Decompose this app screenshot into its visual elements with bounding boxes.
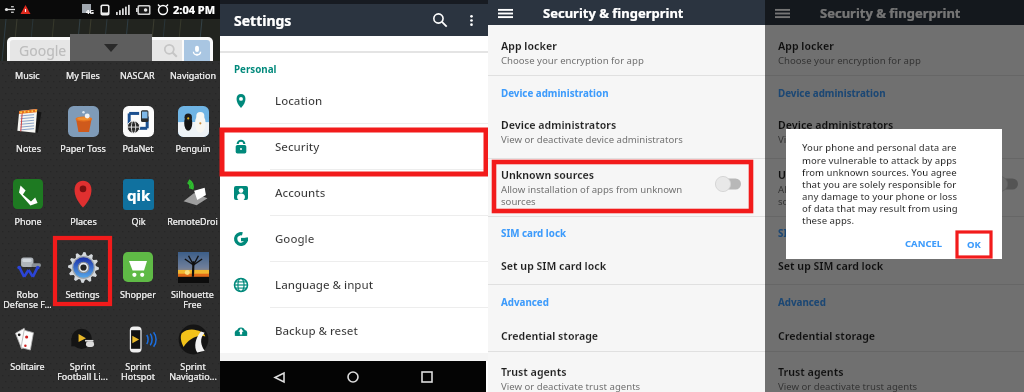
- button[interactable]: Google: [7, 37, 213, 61]
- button[interactable]: Robo Defense F...: [0, 250, 55, 316]
- staticText: Accounts: [275, 185, 326, 201]
- button[interactable]: Credential storage: [501, 326, 599, 346]
- staticText: 4G: [86, 8, 94, 16]
- button[interactable]: RemoteDroi: [165, 177, 220, 243]
- button[interactable]: Home: [338, 362, 368, 392]
- staticText: SIM card lock: [501, 227, 567, 240]
- button[interactable]: Language & input: [220, 262, 488, 308]
- staticText: Trust agents: [778, 365, 844, 379]
- button[interactable]: My Files: [55, 69, 110, 83]
- button[interactable]: Search: [426, 6, 454, 34]
- button[interactable]: Device administrators: [501, 118, 683, 146]
- button[interactable]: Device administrators: [778, 118, 960, 146]
- staticText: qik: [127, 185, 151, 205]
- staticText: View or deactivate device administrators: [778, 133, 960, 146]
- staticText: Unknown sources: [501, 168, 595, 182]
- staticText: Settings: [65, 288, 100, 300]
- button[interactable]: More options: [459, 8, 484, 33]
- button[interactable]: Navigation: [165, 69, 220, 83]
- button[interactable]: App locker: [501, 39, 644, 67]
- staticText: App locker: [501, 39, 557, 53]
- button[interactable]: Menu: [494, 2, 516, 24]
- button[interactable]: Trust agents: [778, 365, 918, 392]
- staticText: Allow installation of apps from unknown …: [501, 183, 683, 208]
- staticText: Security & fingerprint: [543, 4, 684, 22]
- button[interactable]: Penguin: [165, 104, 220, 170]
- staticText: Sprint Football Li...: [57, 360, 108, 382]
- staticText: View or deactivate trust agents: [778, 380, 918, 392]
- staticText: Solitaire: [10, 360, 45, 372]
- button[interactable]: Sprint Navigatio...: [165, 322, 220, 388]
- staticText: Settings: [234, 11, 292, 30]
- button[interactable]: CANCEL: [898, 233, 949, 253]
- button[interactable]: Back: [264, 362, 294, 392]
- button[interactable]: Backup & reset: [220, 308, 488, 354]
- button[interactable]: Notes: [0, 104, 55, 170]
- staticText: Set up SIM card lock: [501, 259, 607, 273]
- button[interactable]: Unknown sources: [778, 168, 960, 208]
- staticText: Choose your encryption for app: [778, 54, 921, 67]
- button[interactable]: Trust agents: [501, 365, 641, 392]
- staticText: Device administration: [501, 87, 609, 100]
- staticText: Choose your encryption for app: [501, 54, 644, 67]
- staticText: View or deactivate device administrators: [501, 133, 683, 146]
- button[interactable]: Recents: [412, 362, 442, 392]
- button[interactable]: Credential storage: [778, 326, 876, 346]
- button[interactable]: Set up SIM card lock: [778, 256, 884, 276]
- button[interactable]: Menu: [771, 2, 793, 24]
- button[interactable]: App locker: [778, 39, 921, 67]
- button[interactable]: Security: [220, 124, 488, 170]
- button[interactable]: Google: [220, 216, 488, 262]
- button[interactable]: qik: [110, 177, 165, 243]
- button[interactable]: Voice search: [184, 40, 210, 61]
- button[interactable]: Device administration: [778, 83, 886, 103]
- button[interactable]: Unknown sources toggle: [987, 170, 1024, 198]
- button[interactable]: Places: [55, 177, 110, 243]
- button[interactable]: NASCAR: [110, 69, 165, 83]
- button[interactable]: Set up SIM card lock: [501, 256, 607, 276]
- staticText: 2:04 PM: [173, 2, 216, 17]
- staticText: SIM card lock: [778, 227, 844, 240]
- staticText: Set up SIM card lock: [778, 259, 884, 273]
- staticText: PdaNet: [122, 142, 154, 154]
- button[interactable]: Unknown sources toggle: [710, 170, 748, 198]
- staticText: My Files: [66, 69, 100, 81]
- button[interactable]: Phone: [0, 177, 55, 243]
- staticText: NASCAR: [120, 69, 155, 81]
- button[interactable]: Search options: [70, 34, 152, 61]
- button[interactable]: Music: [0, 69, 55, 83]
- staticText: Sprint Hotspot: [121, 360, 155, 382]
- staticText: Credential storage: [501, 329, 599, 343]
- staticText: OK: [967, 238, 981, 251]
- button[interactable]: Accounts: [220, 170, 488, 216]
- button[interactable]: PdaNet: [110, 104, 165, 170]
- button[interactable]: Solitaire: [0, 322, 55, 388]
- staticText: Qik: [131, 215, 146, 227]
- button[interactable]: Sprint Hotspot: [110, 322, 165, 388]
- button[interactable]: Advanced: [501, 292, 549, 312]
- button[interactable]: Shopper: [110, 250, 165, 316]
- staticText: Personal: [234, 63, 277, 76]
- button[interactable]: SIM card lock: [778, 223, 844, 243]
- staticText: Device administrators: [501, 118, 617, 132]
- staticText: Security & fingerprint: [820, 4, 961, 22]
- staticText: View or deactivate trust agents: [501, 380, 641, 392]
- button[interactable]: Silhouette Free: [165, 250, 220, 316]
- staticText: Google: [19, 41, 67, 60]
- staticText: Shopper: [120, 288, 156, 300]
- button[interactable]: Advanced: [778, 292, 826, 312]
- staticText: Trust agents: [501, 365, 567, 379]
- staticText: Allow installation of apps from unknown …: [778, 183, 960, 208]
- staticText: Navigation: [170, 69, 216, 81]
- button[interactable]: Location: [220, 78, 488, 124]
- staticText: Sprint Navigatio...: [169, 360, 217, 382]
- staticText: CANCEL: [905, 237, 943, 250]
- button[interactable]: OK: [957, 232, 991, 257]
- button[interactable]: Settings: [55, 250, 110, 316]
- button[interactable]: Unknown sources: [501, 168, 683, 208]
- button[interactable]: SIM card lock: [501, 223, 567, 243]
- staticText: Advanced: [501, 296, 549, 309]
- button[interactable]: Paper Toss: [55, 104, 110, 170]
- button[interactable]: Device administration: [501, 83, 609, 103]
- button[interactable]: Sprint Football Li...: [55, 322, 110, 388]
